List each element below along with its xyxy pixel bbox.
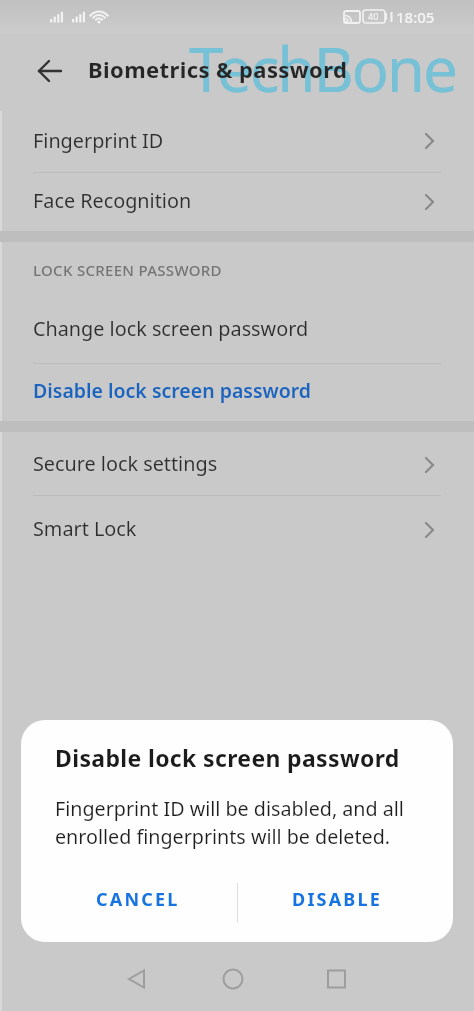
staticText: Smart Lock (33, 515, 137, 542)
staticText: 40 (368, 10, 379, 22)
staticText: Face Recognition (33, 187, 192, 214)
staticText: Secure lock settings (33, 450, 218, 477)
staticText: DISABLE (292, 887, 383, 912)
staticText: Fingerprint ID (33, 127, 164, 154)
staticText: Change lock screen password (33, 315, 309, 342)
staticText: Fingerprint ID will be disabled, and all… (55, 795, 404, 850)
staticText: TechBone (189, 26, 456, 110)
staticText: Disable lock screen password (33, 377, 312, 404)
staticText: 18:05 (396, 7, 435, 27)
staticText: CANCEL (96, 887, 180, 912)
staticText: LOCK SCREEN PASSWORD (33, 260, 222, 280)
staticText: Disable lock screen password (55, 742, 400, 773)
staticText: Biometrics & password (88, 54, 348, 84)
